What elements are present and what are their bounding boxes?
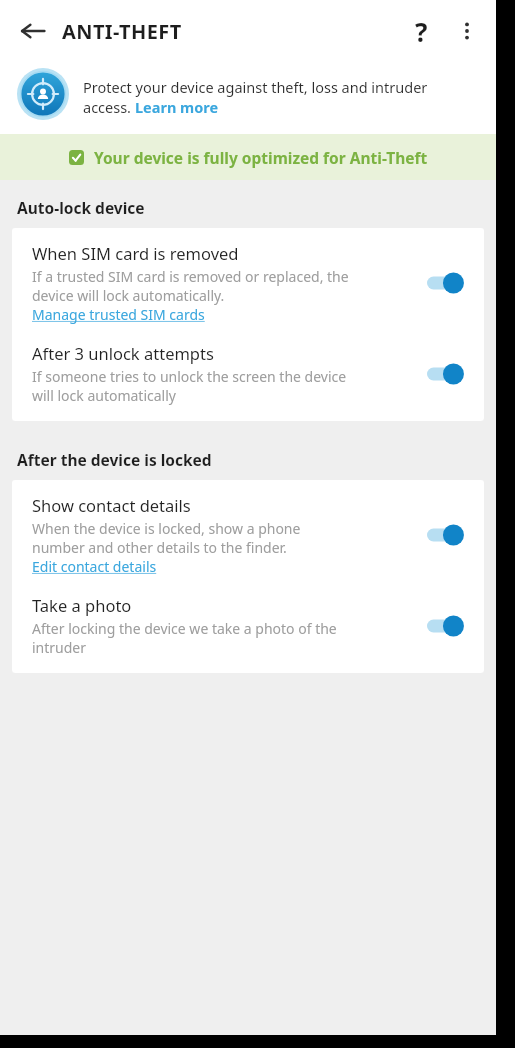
button[interactable]: Back [11,9,55,53]
staticText: When the device is locked, show a phone [32,519,301,538]
staticText: Edit contact details [32,557,157,576]
button[interactable]: Toggle on [418,518,470,552]
button[interactable]: Manage trusted SIM cards [32,305,205,324]
button[interactable]: Learn more [135,97,219,117]
staticText: intruder [32,638,87,657]
staticText: Learn more [135,97,219,117]
button[interactable]: When SIM card is removed [12,228,484,334]
staticText: number and other details to the finder. [32,538,287,557]
staticText: Protect your device against theft, loss … [83,77,428,97]
button[interactable]: After 3 unlock attempts [12,334,484,421]
staticText: Auto-lock device [17,197,145,218]
staticText: Manage trusted SIM cards [32,305,205,324]
staticText: Your device is fully optimized for Anti-… [94,147,428,168]
staticText: Show contact details [32,494,191,516]
button[interactable]: Help [398,8,444,54]
staticText: If someone tries to unlock the screen th… [32,367,347,386]
staticText: device will lock automatically. [32,286,225,305]
staticText: access. [83,97,135,117]
button[interactable]: Toggle on [418,609,470,643]
staticText: will lock automatically [32,386,176,405]
staticText: If a trusted SIM card is removed or repl… [32,267,349,286]
button[interactable]: Take a photo [12,586,484,673]
button[interactable]: Show contact details [12,480,484,586]
button[interactable]: Edit contact details [32,557,157,576]
button[interactable]: More options [444,8,490,54]
staticText: ANTI-THEFT [62,18,182,45]
staticText: When SIM card is removed [32,242,239,264]
button[interactable]: Toggle on [418,266,470,300]
staticText: After locking the device we take a photo… [32,619,337,638]
staticText: Take a photo [32,594,132,616]
staticText: After the device is locked [17,449,212,470]
staticText: ? [415,14,428,49]
button[interactable]: Toggle on [418,357,470,391]
staticText: After 3 unlock attempts [32,342,214,364]
